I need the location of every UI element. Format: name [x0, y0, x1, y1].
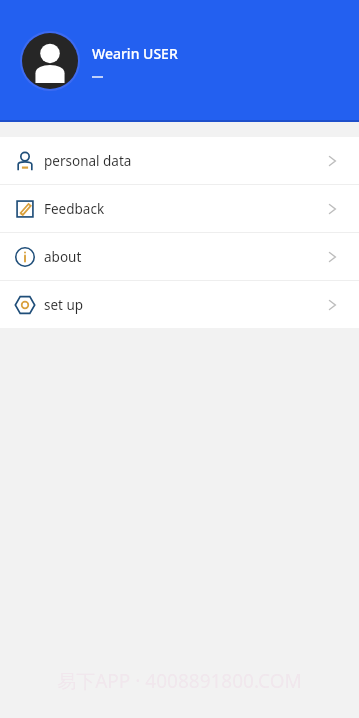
button[interactable]: Feedback	[0, 185, 359, 232]
button[interactable]: Wearin USER	[0, 0, 359, 122]
staticText: Feedback	[44, 200, 105, 218]
staticText: set up	[44, 296, 84, 314]
other: Open Feedback	[325, 202, 339, 216]
button[interactable]: personal data	[0, 137, 359, 184]
staticText: 易下APP · 4008891800.COM	[0, 668, 359, 694]
other: Open about	[325, 250, 339, 264]
staticText: about	[44, 248, 82, 266]
button[interactable]: about	[0, 233, 359, 280]
other: Open set up	[325, 298, 339, 312]
staticText: personal data	[44, 152, 132, 170]
other: Open personal data	[325, 154, 339, 168]
button[interactable]: set up	[0, 281, 359, 328]
staticText: Wearin USER	[92, 44, 178, 63]
